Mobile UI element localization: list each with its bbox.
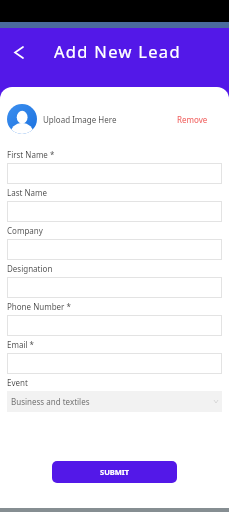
staticText: SUBMIT [100, 467, 130, 477]
staticText: Upload Image Here [43, 114, 117, 125]
button[interactable] [7, 315, 222, 336]
button[interactable]: Back [5, 38, 33, 66]
staticText: First Name * [7, 149, 55, 160]
button[interactable]: Upload image [7, 104, 37, 134]
button[interactable] [7, 201, 222, 222]
staticText: Event [7, 377, 28, 388]
button[interactable] [7, 163, 222, 184]
staticText: Business and textiles [11, 396, 90, 407]
staticText: Remove [177, 114, 208, 125]
button[interactable] [7, 277, 222, 298]
button[interactable]: SUBMIT [52, 461, 177, 483]
button[interactable]: Business and textiles [7, 391, 222, 412]
staticText: Email * [7, 339, 35, 350]
staticText: Designation [7, 263, 53, 274]
staticText: Phone Number * [7, 301, 71, 312]
button[interactable] [7, 239, 222, 260]
staticText: Last Name [7, 187, 48, 198]
button[interactable]: Remove [177, 114, 222, 125]
staticText: Company [7, 225, 43, 236]
staticText: Add New Lead [54, 40, 181, 62]
button[interactable] [7, 353, 222, 374]
